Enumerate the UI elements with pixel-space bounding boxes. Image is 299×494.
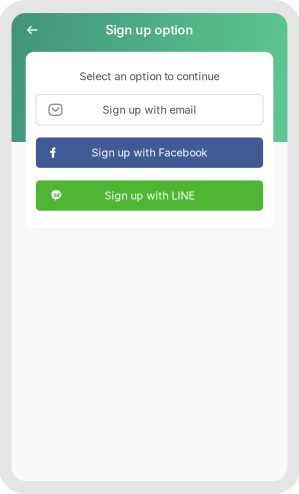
staticText: Select an option to continue (79, 70, 219, 83)
button[interactable]: Back (19, 18, 45, 42)
staticText: Sign up with Facebook (91, 146, 207, 159)
staticText: Sign up with email (102, 103, 196, 116)
staticText: Sign up with LINE (104, 189, 194, 202)
staticText: LINE (51, 193, 61, 198)
staticText: Sign up option (105, 22, 193, 38)
button[interactable]: Sign up with LINE (36, 180, 263, 211)
button[interactable]: Sign up with Facebook (36, 137, 263, 168)
button[interactable]: Sign up with email (36, 95, 263, 125)
